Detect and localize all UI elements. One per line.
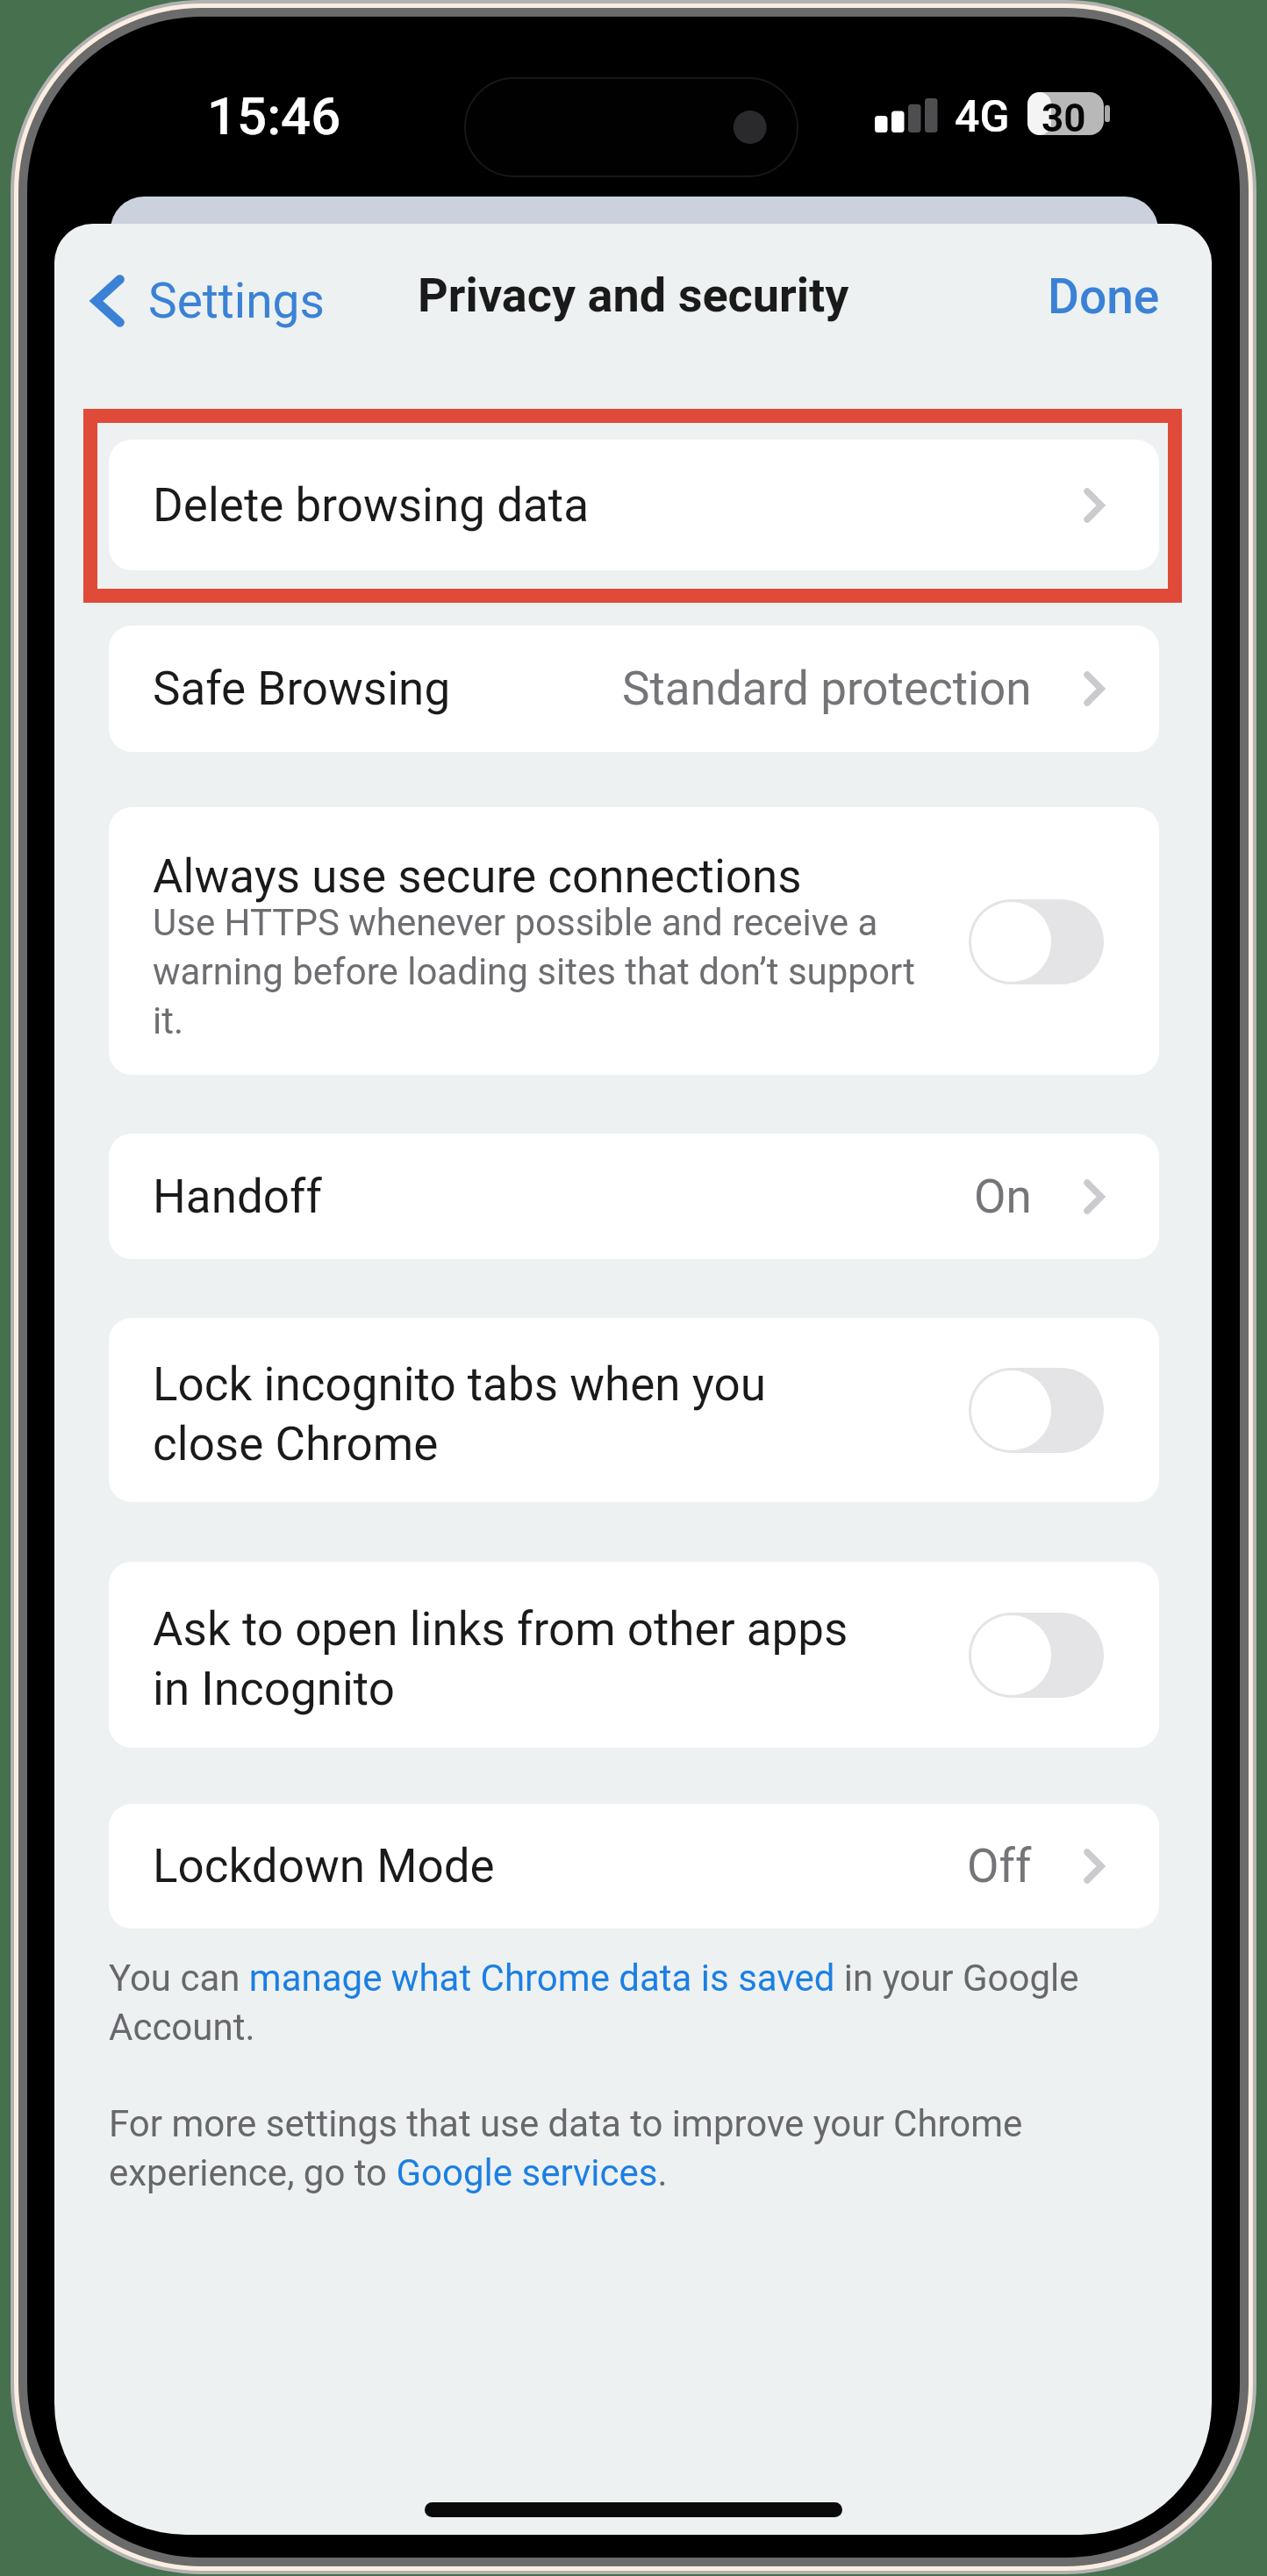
- staticText: You can manage what Chrome data is saved…: [109, 1957, 1079, 2050]
- staticText: 4G: [955, 91, 1010, 143]
- staticText: 15:46: [207, 85, 341, 147]
- staticText: Lock incognito tabs when you close Chrom…: [153, 1357, 766, 1471]
- button[interactable]: Delete browsing data: [109, 440, 1159, 570]
- staticText: Lockdown Mode: [153, 1839, 495, 1893]
- button[interactable]: Safe Browsing: [109, 626, 1159, 752]
- button[interactable]: Ask to open links from other apps in Inc…: [109, 1562, 1159, 1748]
- staticText: Delete browsing data: [153, 478, 590, 533]
- button[interactable]: Lockdown Mode: [109, 1804, 1159, 1928]
- button[interactable]: Toggle setting off: [969, 1613, 1104, 1698]
- button[interactable]: Toggle setting off: [969, 1368, 1104, 1453]
- staticText: Use HTTPS whenever possible and receive …: [153, 901, 915, 1043]
- staticText: Settings: [148, 273, 325, 329]
- button[interactable]: Always use secure connections: [109, 807, 1159, 1075]
- staticText: Safe Browsing: [153, 662, 451, 716]
- staticText: Standard protection: [622, 662, 1032, 716]
- button[interactable]: Lock incognito tabs when you close Chrom…: [109, 1318, 1159, 1502]
- staticText: For more settings that use data to impro…: [109, 2102, 1023, 2195]
- staticText: On: [974, 1170, 1032, 1224]
- button[interactable]: Done: [1041, 261, 1167, 332]
- staticText: Handoff: [153, 1170, 322, 1224]
- staticText: Privacy and security: [418, 268, 849, 323]
- staticText: 30: [1042, 96, 1086, 141]
- staticText: Ask to open links from other apps in Inc…: [153, 1602, 848, 1716]
- staticText: Always use secure connections: [153, 849, 802, 904]
- button[interactable]: Handoff: [109, 1134, 1159, 1259]
- button[interactable]: Back to Settings: [90, 263, 325, 339]
- staticText: Done: [1048, 268, 1160, 325]
- button[interactable]: Toggle setting off: [969, 899, 1104, 984]
- staticText: Off: [967, 1839, 1032, 1893]
